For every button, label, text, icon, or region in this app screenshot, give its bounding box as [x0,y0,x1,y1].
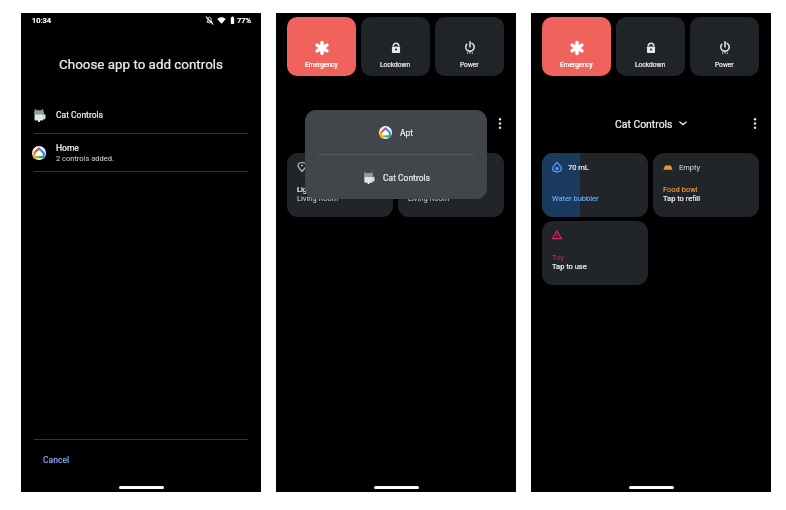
staticText: Lockdown [380,61,411,69]
staticText: 2 controls added. [56,154,114,163]
staticText: Emergency [305,61,338,69]
staticText: Living Room [297,194,339,203]
staticText: Emergency [560,61,593,69]
staticText: Tap to refill [663,194,700,203]
button[interactable]: Power [690,17,759,76]
staticText: Choose app to add controls [21,57,261,73]
button[interactable]: Emergency [287,17,356,76]
staticText: Lockdown [635,61,666,69]
staticText: Apt [400,128,414,138]
staticText: 10:34 [32,16,52,25]
button[interactable]: More options [496,117,504,130]
button[interactable]: Cat Controls [21,96,261,133]
staticText: 70 mL [568,163,589,172]
staticText: Tap to use [552,262,587,271]
button[interactable]: Cat Controls [611,114,691,132]
button[interactable]: More options [751,117,759,130]
button[interactable]: Apt [305,110,487,154]
button[interactable]: Power [435,17,504,76]
button[interactable]: Cancel [21,451,78,469]
button[interactable]: Emergency [542,17,611,76]
button[interactable]: Empty [653,153,759,217]
staticText: Cat Controls [56,110,103,120]
staticText: Cat Controls [383,173,430,183]
staticText: Toy [552,253,564,262]
staticText: Living Room [408,194,450,203]
staticText: Power [715,61,734,69]
staticText: Cat Controls [615,118,673,128]
button[interactable]: Light [398,153,504,217]
button[interactable]: Light [287,153,393,217]
button[interactable]: Lockdown [616,17,685,76]
button[interactable]: Lockdown [361,17,430,76]
staticText: Light [297,185,314,194]
staticText: Home [56,143,79,153]
button[interactable]: Cat Controls [305,155,487,199]
staticText: Cancel [43,455,70,465]
button[interactable]: 70 mL [542,153,648,217]
button[interactable]: Toy [542,221,648,285]
staticText: Power [460,61,479,69]
staticText: Water bubbler [552,194,599,203]
staticText: 77% [237,16,252,25]
button[interactable]: Home [21,134,261,171]
staticText: Empty [679,163,701,172]
staticText: Food bowl [663,185,698,194]
